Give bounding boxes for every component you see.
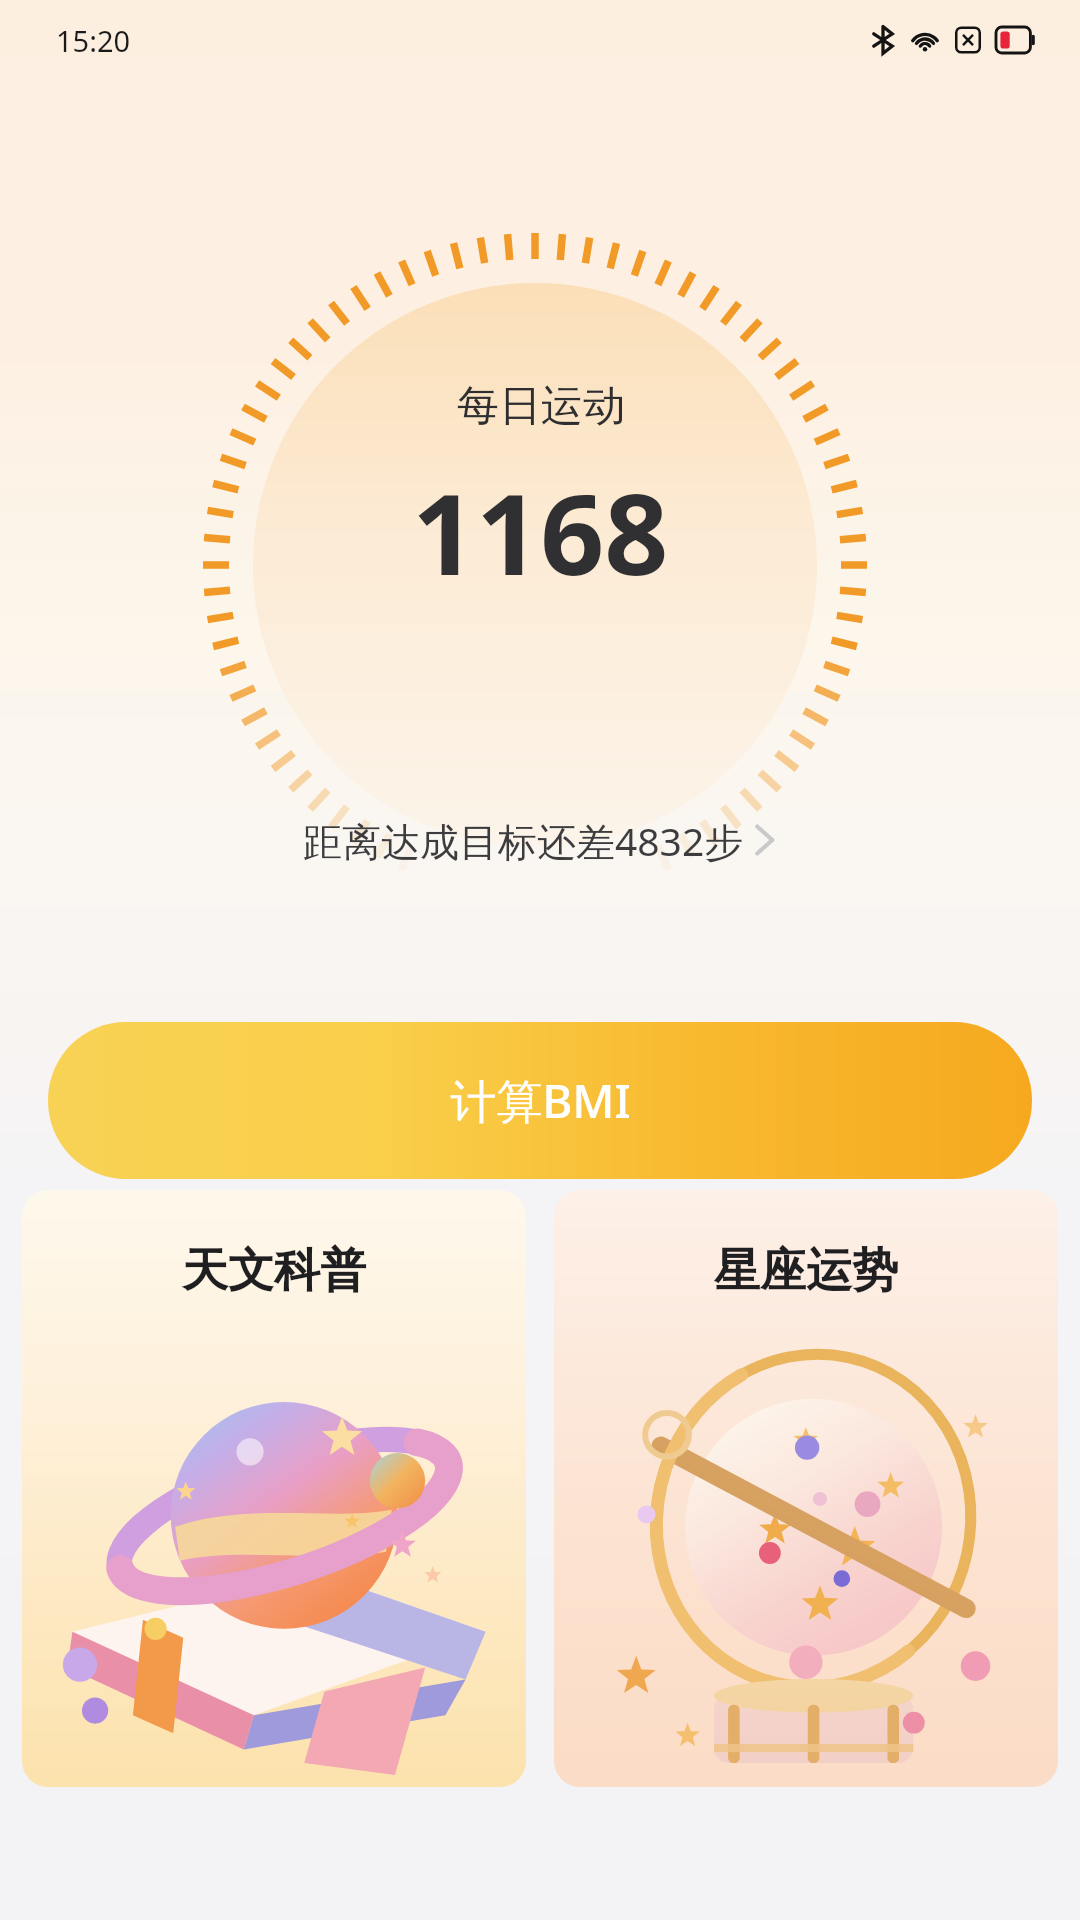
staticText: 天文科普 [182, 1242, 366, 1300]
button[interactable]: 计算BMI [48, 1022, 1032, 1179]
staticText: 距离达成目标还差4832步 [303, 814, 744, 867]
button[interactable]: 距离达成目标还差4832步 [0, 780, 1080, 900]
staticText: 每日运动 [457, 380, 625, 433]
staticText: 1168 [412, 455, 669, 608]
button[interactable]: 天文科普 [22, 1190, 526, 1787]
button[interactable]: 星座运势 [554, 1190, 1058, 1787]
staticText: 星座运势 [714, 1242, 898, 1300]
staticText: 15:20 [56, 21, 131, 60]
staticText: 计算BMI [450, 1069, 631, 1132]
